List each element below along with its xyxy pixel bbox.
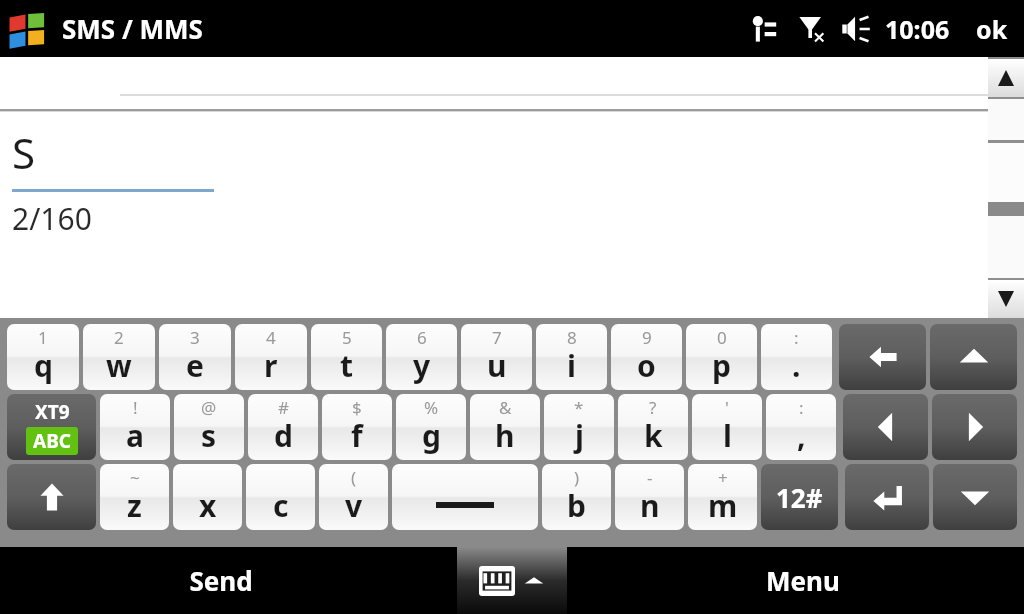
staticText: :	[794, 326, 799, 349]
staticText: t	[340, 345, 354, 386]
staticText: k	[644, 415, 663, 456]
staticText: *	[574, 396, 584, 419]
button[interactable]: :	[761, 324, 832, 390]
staticText: 1	[38, 326, 48, 349]
staticText: 2/160	[12, 198, 92, 239]
button[interactable]: Right	[932, 394, 1017, 460]
button[interactable]: Menu	[582, 547, 1024, 614]
staticText: i	[567, 345, 576, 386]
staticText: %	[424, 396, 439, 419]
staticText: $	[352, 396, 362, 419]
button[interactable]: ?	[618, 394, 688, 460]
button[interactable]: XT9 input mode	[7, 394, 96, 460]
staticText: j	[575, 415, 584, 456]
staticText: '	[725, 396, 729, 419]
button[interactable]: :	[766, 394, 836, 460]
button[interactable]: S	[0, 112, 988, 318]
staticText: u	[487, 345, 507, 386]
staticText: +	[718, 466, 728, 489]
staticText: ,	[797, 415, 806, 456]
staticText: &	[499, 396, 512, 419]
button[interactable]: #	[248, 394, 318, 460]
button[interactable]: Shift	[7, 464, 96, 530]
staticText: 3	[190, 326, 200, 349]
staticText: )	[574, 466, 580, 489]
button[interactable]: 2	[83, 324, 155, 390]
staticText: ok	[976, 12, 1008, 46]
button[interactable]: 9	[611, 324, 682, 390]
button[interactable]: 6	[386, 324, 457, 390]
staticText: c	[273, 485, 289, 526]
staticText: S	[12, 124, 36, 181]
staticText: @	[201, 396, 217, 419]
button[interactable]: )	[542, 464, 611, 530]
staticText: v	[345, 485, 363, 526]
staticText: s	[201, 415, 217, 456]
staticText: e	[186, 345, 204, 386]
button[interactable]: Left	[843, 394, 928, 460]
staticText: ~	[130, 466, 140, 489]
staticText: !	[133, 396, 138, 419]
button[interactable]	[0, 57, 988, 109]
staticText: z	[127, 485, 142, 526]
button[interactable]: x	[173, 464, 242, 530]
staticText: Send	[189, 563, 253, 598]
button[interactable]: 0	[686, 324, 757, 390]
staticText: p	[712, 345, 731, 386]
button[interactable]: 7	[461, 324, 532, 390]
button[interactable]: Enter	[845, 464, 929, 530]
staticText: m	[708, 485, 738, 526]
staticText: .	[792, 345, 801, 386]
staticText: n	[640, 485, 660, 526]
button[interactable]: 3	[159, 324, 231, 390]
button[interactable]: Show keyboard	[442, 547, 582, 614]
staticText: 7	[492, 326, 502, 349]
button[interactable]: @	[174, 394, 244, 460]
button[interactable]: 4	[235, 324, 307, 390]
staticText: f	[351, 415, 363, 456]
staticText: g	[422, 415, 441, 456]
staticText: 12#	[776, 480, 823, 515]
button[interactable]: $	[322, 394, 392, 460]
button[interactable]: Up	[930, 324, 1017, 390]
staticText: b	[567, 485, 586, 526]
button[interactable]: Backspace	[839, 324, 926, 390]
button[interactable]: ~	[100, 464, 169, 530]
button[interactable]: Down	[933, 464, 1017, 530]
staticText: r	[264, 345, 278, 386]
staticText: x	[199, 485, 217, 526]
staticText: (	[351, 466, 357, 489]
button[interactable]: (	[319, 464, 388, 530]
button[interactable]: Send	[0, 547, 442, 614]
button[interactable]: %	[396, 394, 466, 460]
staticText: y	[413, 345, 431, 386]
button[interactable]: 1	[7, 324, 79, 390]
staticText: 5	[342, 326, 352, 349]
staticText: 0	[717, 326, 727, 349]
staticText: l	[723, 415, 732, 456]
button[interactable]: &	[470, 394, 540, 460]
button[interactable]: c	[246, 464, 315, 530]
staticText: ABC	[33, 428, 71, 454]
button[interactable]: Scroll up	[988, 59, 1024, 97]
button[interactable]: Scroll down	[988, 280, 1024, 318]
button[interactable]: 12#	[761, 464, 838, 530]
button[interactable]: *	[544, 394, 614, 460]
staticText: a	[126, 415, 144, 456]
button[interactable]: 5	[311, 324, 382, 390]
button[interactable]: +	[688, 464, 757, 530]
staticText: SMS / MMS	[62, 11, 203, 46]
staticText: XT9	[35, 399, 70, 425]
staticText: ?	[649, 396, 657, 419]
button[interactable]: 8	[536, 324, 607, 390]
staticText: Menu	[766, 563, 840, 598]
staticText: 4	[266, 326, 276, 349]
button[interactable]: Space	[392, 464, 538, 530]
button[interactable]: -	[615, 464, 684, 530]
button[interactable]: !	[100, 394, 170, 460]
staticText: 10:06	[885, 12, 950, 46]
button[interactable]: '	[692, 394, 762, 460]
button[interactable]: ok	[972, 6, 1012, 52]
staticText: 8	[567, 326, 577, 349]
staticText: w	[106, 345, 132, 386]
